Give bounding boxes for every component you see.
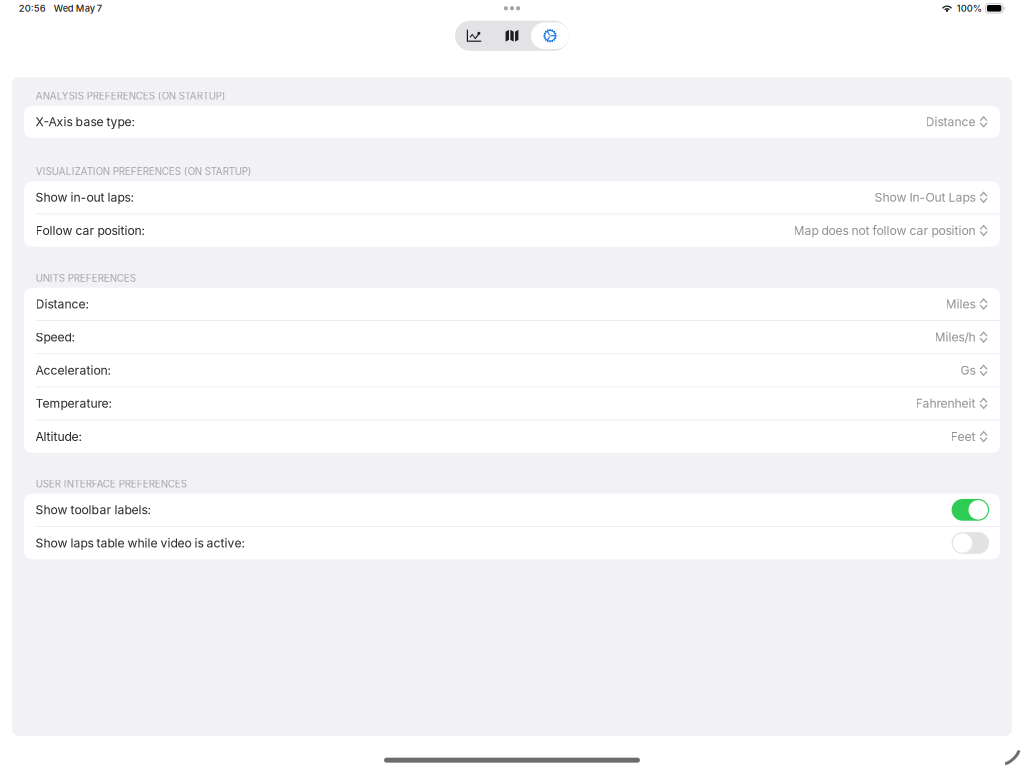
staticText: Show In-Out Laps [875, 190, 976, 205]
button[interactable]: Show in-out laps: [24, 181, 1000, 214]
staticText: Fahrenheit [916, 396, 976, 411]
staticText: ANALYSIS PREFERENCES (ON STARTUP) [36, 90, 226, 102]
button[interactable]: Acceleration: [24, 354, 1000, 387]
button[interactable]: X-Axis base type: [24, 106, 1000, 138]
staticText: Wed May 7 [54, 3, 102, 14]
staticText: Show in-out laps: [36, 190, 134, 205]
button[interactable]: Analysis [455, 21, 493, 51]
staticText: 100% [957, 3, 982, 14]
button[interactable]: Distance: [24, 288, 1000, 320]
button[interactable]: Map [493, 21, 531, 51]
staticText: Gs [961, 363, 976, 378]
button[interactable]: Temperature: [24, 387, 1000, 420]
button[interactable]: Follow car position: [24, 214, 1000, 247]
staticText: Distance: [36, 297, 89, 311]
button[interactable]: Settings [531, 21, 569, 51]
staticText: USER INTERFACE PREFERENCES [36, 478, 187, 490]
staticText: Show toolbar labels: [36, 502, 151, 517]
staticText: Distance [926, 114, 976, 129]
staticText: Miles/h [935, 330, 976, 344]
button[interactable]: Speed: [24, 321, 1000, 353]
staticText: Follow car position: [36, 223, 145, 238]
button[interactable]: Show toolbar labels: [24, 494, 1000, 526]
staticText: 20:56 [19, 3, 46, 14]
staticText: X-Axis base type: [36, 114, 135, 129]
staticText: UNITS PREFERENCES [36, 272, 136, 284]
staticText: VISUALIZATION PREFERENCES (ON STARTUP) [36, 166, 252, 177]
staticText: Show laps table while video is active: [36, 536, 245, 550]
button[interactable]: Altitude: [24, 420, 1000, 453]
staticText: Temperature: [36, 396, 112, 411]
staticText: Altitude: [36, 429, 82, 444]
staticText: Acceleration: [36, 363, 111, 378]
staticText: Map does not follow car position [794, 223, 976, 238]
button[interactable]: Show laps table while video is active: [24, 527, 1000, 559]
staticText: Speed: [36, 330, 75, 344]
staticText: Feet [951, 429, 976, 444]
staticText: Miles [946, 297, 976, 311]
